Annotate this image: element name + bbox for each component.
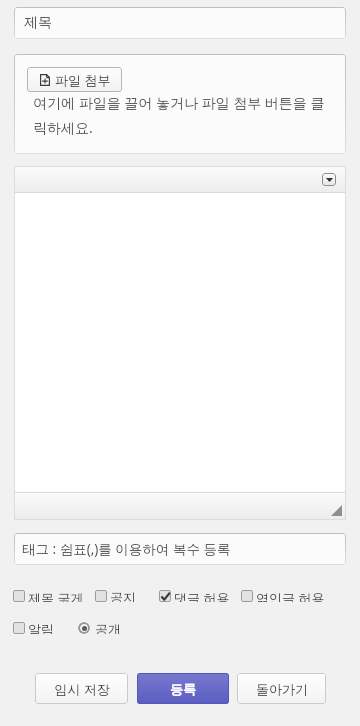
staticText: 등록 bbox=[170, 681, 196, 697]
staticText: 태그 : 쉼표(,)를 이용하여 복수 등록 bbox=[22, 540, 231, 558]
button[interactable]: 엮인글 허용 bbox=[241, 589, 325, 602]
button[interactable]: 임시 저장 bbox=[35, 673, 128, 704]
staticText: 여기에 파일을 끌어 놓거나 파일 첨부 버튼을 클릭하세요. bbox=[33, 93, 334, 137]
staticText: 공지 bbox=[110, 589, 136, 602]
staticText: 제목 굵게 bbox=[28, 589, 84, 602]
staticText: 댓글 허용 bbox=[174, 589, 230, 602]
button[interactable]: 태그 : 쉼표(,)를 이용하여 복수 등록 bbox=[14, 533, 346, 565]
button[interactable]: 알림 bbox=[13, 621, 54, 634]
staticText: 알림 bbox=[28, 621, 54, 634]
button[interactable]: 파일 첨부 bbox=[27, 67, 122, 92]
button[interactable]: Expand editor toolbar bbox=[322, 173, 336, 186]
staticText: 돌아가기 bbox=[256, 681, 308, 697]
button[interactable]: 제목 bbox=[14, 7, 346, 39]
button[interactable]: 공지 bbox=[95, 589, 136, 602]
staticText: 임시 저장 bbox=[54, 680, 110, 698]
button[interactable]: 돌아가기 bbox=[237, 673, 326, 704]
staticText: 제목 bbox=[24, 14, 52, 32]
button[interactable]: 공개 bbox=[78, 621, 121, 634]
button[interactable]: 등록 bbox=[137, 673, 229, 704]
button[interactable]: 댓글 허용 bbox=[159, 589, 230, 602]
button[interactable]: 제목 굵게 bbox=[13, 589, 84, 602]
staticText: 엮인글 허용 bbox=[256, 589, 325, 602]
button[interactable]: Resize editor bbox=[14, 493, 346, 520]
staticText: 공개 bbox=[95, 621, 121, 634]
staticText: 파일 첨부 bbox=[55, 71, 111, 89]
